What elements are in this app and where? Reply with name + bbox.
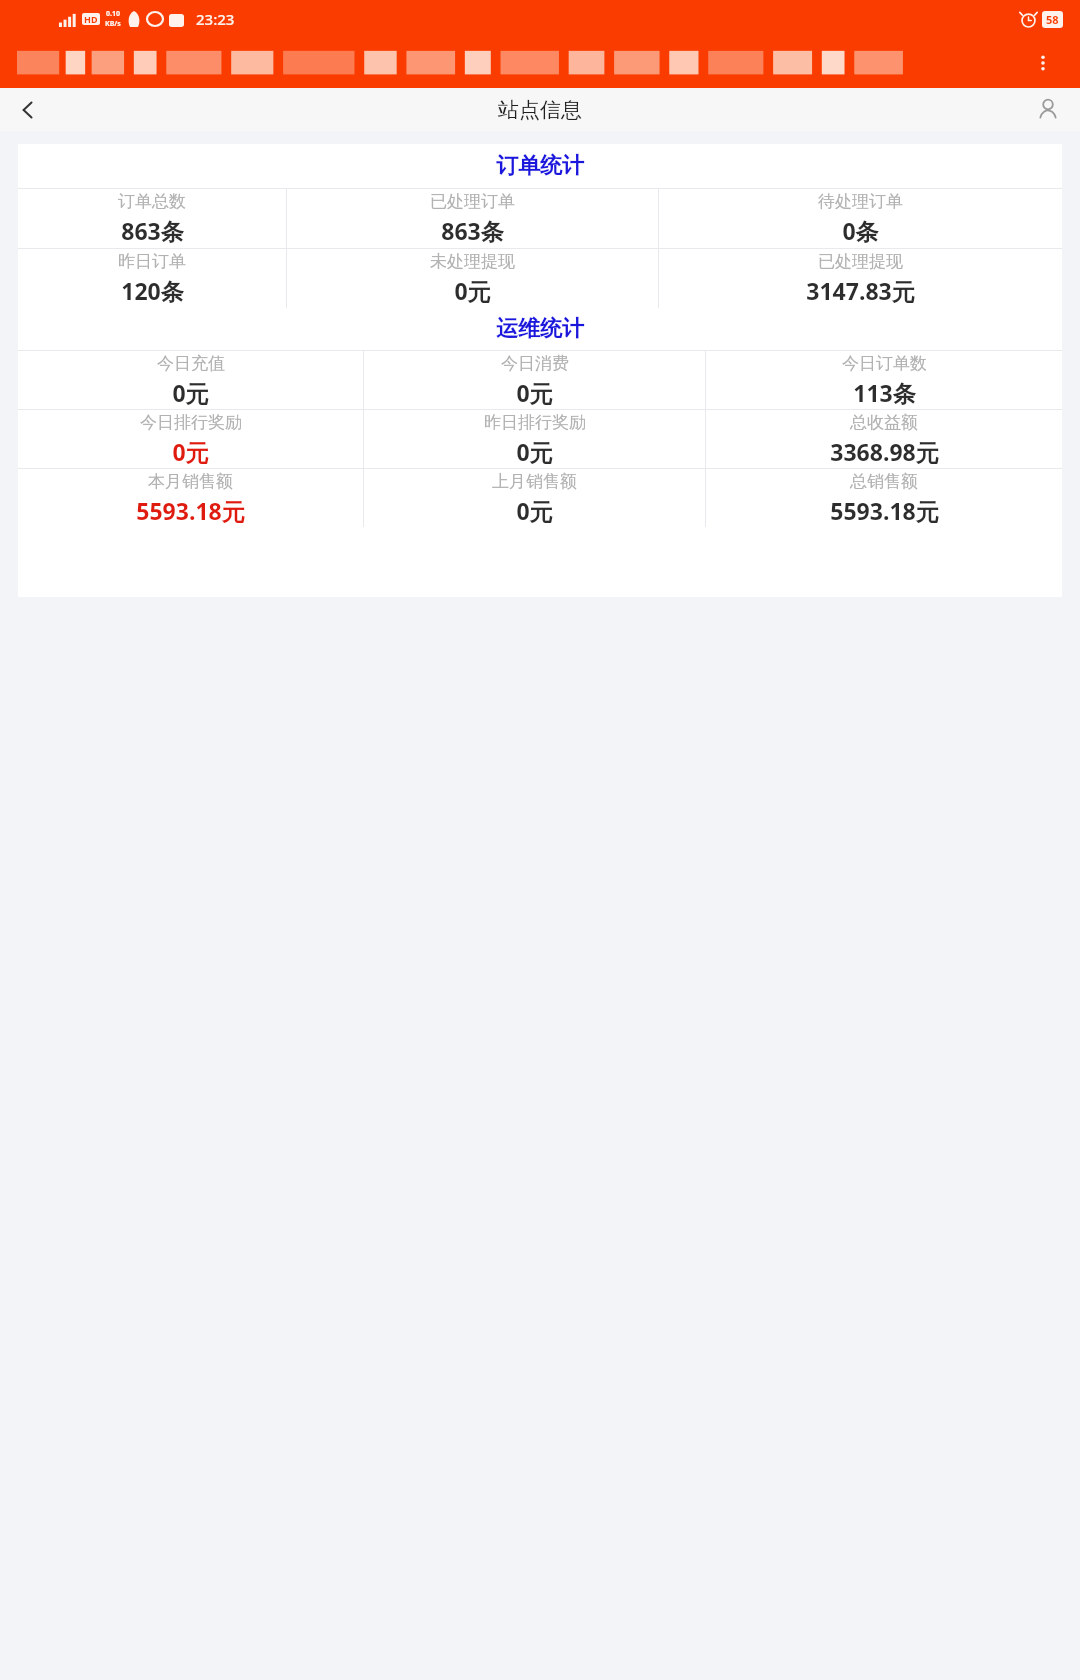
staticText: 今日充值 <box>157 353 225 374</box>
staticText: 0元 <box>172 377 209 408</box>
staticText: 今日排行奖励 <box>140 412 242 433</box>
button[interactable]: 本月销售额 <box>18 469 363 527</box>
staticText: 120条 <box>121 275 184 306</box>
button[interactable]: 今日充值 <box>18 351 363 409</box>
staticText: 58 <box>1046 12 1059 27</box>
staticText: 5593.18元 <box>830 495 939 526</box>
button[interactable]: 上月销售额 <box>364 469 705 527</box>
staticText: 113条 <box>853 377 916 408</box>
button[interactable]: 已处理提现 <box>659 249 1062 308</box>
staticText: 订单总数 <box>118 191 186 212</box>
button[interactable]: 昨日排行奖励 <box>364 410 705 468</box>
staticText: 站点信息 <box>498 97 582 123</box>
button[interactable]: 今日消费 <box>364 351 705 409</box>
button[interactable]: 昨日订单 <box>18 249 286 308</box>
staticText: 今日消费 <box>501 353 569 374</box>
staticText: 昨日排行奖励 <box>484 412 586 433</box>
button[interactable]: More options <box>1023 43 1063 83</box>
staticText: 运维统计 <box>496 315 584 343</box>
staticText: 上月销售额 <box>492 471 577 492</box>
staticText: 本月销售额 <box>148 471 233 492</box>
staticText: HD <box>84 13 98 25</box>
staticText: 已处理订单 <box>430 191 515 212</box>
staticText: 863条 <box>441 215 504 246</box>
button[interactable]: 总销售额 <box>706 469 1062 527</box>
staticText: 3147.83元 <box>806 275 915 306</box>
staticText: 未处理提现 <box>430 251 515 272</box>
button[interactable]: 今日排行奖励 <box>18 410 363 468</box>
button[interactable]: Back <box>4 88 52 131</box>
staticText: 总销售额 <box>850 471 918 492</box>
button[interactable]: Account <box>1026 88 1070 131</box>
button[interactable]: 今日订单数 <box>706 351 1062 409</box>
staticText: 待处理订单 <box>818 191 903 212</box>
staticText: 0条 <box>842 215 879 246</box>
button[interactable]: 总收益额 <box>706 410 1062 468</box>
staticText: 0元 <box>454 275 491 306</box>
staticText: 0元 <box>516 495 553 526</box>
staticText: 23:23 <box>196 9 235 29</box>
staticText: 863条 <box>121 215 184 246</box>
staticText: 昨日订单 <box>118 251 186 272</box>
button[interactable]: 订单总数 <box>18 189 286 248</box>
staticText: 已处理提现 <box>818 251 903 272</box>
staticText: 0元 <box>516 377 553 408</box>
staticText: 0.10 <box>106 9 120 19</box>
button[interactable]: 已处理订单 <box>287 189 658 248</box>
staticText: 总收益额 <box>850 412 918 433</box>
staticText: 5593.18元 <box>136 495 245 526</box>
staticText: 0元 <box>516 436 553 467</box>
staticText: 订单统计 <box>496 152 584 180</box>
staticText: 今日订单数 <box>842 353 927 374</box>
staticText: KB/s <box>105 19 121 29</box>
button[interactable]: 待处理订单 <box>659 189 1062 248</box>
staticText: 0元 <box>172 436 209 467</box>
staticText: 3368.98元 <box>830 436 939 467</box>
button[interactable]: 未处理提现 <box>287 249 658 308</box>
